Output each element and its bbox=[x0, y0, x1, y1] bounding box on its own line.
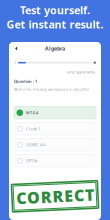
button[interactable]: Crude 1 bbox=[14, 122, 96, 135]
staticText: 1 bbox=[14, 60, 16, 65]
button[interactable]: OPT-8c bbox=[14, 154, 96, 167]
button[interactable]: MT-0.4 bbox=[14, 106, 96, 119]
staticText: Get instant result. bbox=[6, 17, 103, 31]
staticText: MT-0.4 bbox=[26, 110, 38, 115]
staticText: Algebra bbox=[45, 45, 65, 52]
staticText: Which of the following was discovered in… bbox=[14, 88, 89, 91]
staticText: GG80C 4.4 bbox=[26, 142, 45, 147]
staticText: Crude 1 bbox=[26, 126, 40, 131]
staticText: Question : 1 bbox=[14, 79, 37, 84]
staticText: CORRECT bbox=[16, 186, 94, 207]
staticText: Time Spent 04:05 bbox=[66, 69, 95, 75]
button[interactable]: GG80C 4.4 bbox=[14, 138, 96, 151]
button[interactable]: Back bbox=[12, 43, 23, 54]
staticText: Test yourself. bbox=[20, 3, 90, 17]
staticText: OPT-8c bbox=[26, 158, 38, 163]
